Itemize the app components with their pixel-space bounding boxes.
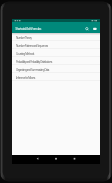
button[interactable] [12,57,100,65]
button[interactable]: Home [51,155,60,164]
button[interactable]: Back [32,155,41,164]
button[interactable] [12,73,100,81]
button[interactable] [12,65,100,73]
button[interactable] [12,49,100,57]
button[interactable]: Search [83,22,91,30]
button[interactable] [12,41,100,49]
button[interactable]: More options [91,22,99,30]
button[interactable]: Recents [70,155,79,164]
button[interactable] [12,33,100,41]
